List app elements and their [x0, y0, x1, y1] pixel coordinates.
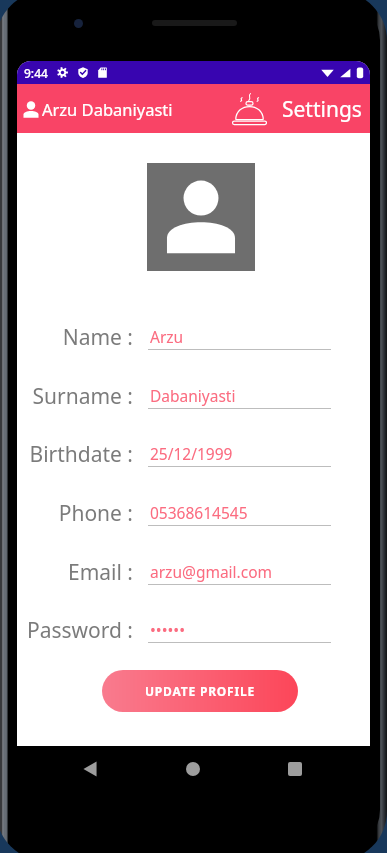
button[interactable]: Name :	[17, 319, 370, 359]
button[interactable]: Profile photo	[147, 163, 255, 271]
staticText: 05368614545	[150, 502, 248, 523]
staticText: Phone :	[58, 499, 133, 528]
staticText: 25/12/1999	[150, 443, 233, 464]
staticText: Surname :	[32, 382, 133, 411]
button[interactable]: Email :	[17, 554, 370, 594]
staticText: Arzu Dabaniyasti	[42, 98, 173, 120]
staticText: Settings	[282, 95, 362, 124]
button[interactable]: Arzu Dabaniyasti	[23, 98, 173, 120]
staticText: Arzu	[150, 326, 184, 347]
staticText: Dabaniyasti	[150, 385, 236, 406]
staticText: Birthdate :	[29, 440, 133, 469]
staticText: UPDATE PROFILE	[145, 683, 255, 699]
staticText: ••••••	[150, 619, 185, 640]
button[interactable]: Phone :	[17, 495, 370, 535]
staticText: 9:44	[24, 65, 48, 81]
button[interactable]: UPDATE PROFILE	[102, 670, 298, 712]
button[interactable]: Password :	[17, 612, 370, 652]
button[interactable]: Surname :	[17, 378, 370, 418]
staticText: arzu@gmail.com	[150, 561, 273, 582]
button[interactable]: Settings	[232, 93, 362, 125]
button[interactable]: Birthdate :	[17, 436, 370, 476]
button[interactable]: Home	[177, 753, 209, 785]
staticText: Password :	[26, 616, 133, 645]
staticText: Name :	[62, 323, 133, 352]
button[interactable]: Recents	[279, 753, 311, 785]
button[interactable]: Back	[74, 753, 106, 785]
staticText: Email :	[67, 558, 133, 587]
